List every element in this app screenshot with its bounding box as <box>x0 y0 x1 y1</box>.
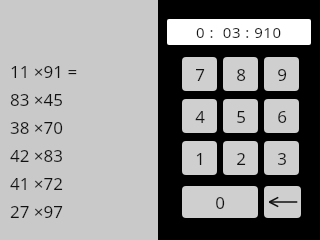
staticText: 1 <box>195 147 205 170</box>
staticText: 7 <box>195 63 205 86</box>
staticText: 6 <box>277 105 287 128</box>
staticText: 38 ×70 <box>10 116 64 139</box>
staticText: 9 <box>277 63 287 86</box>
staticText: 11 ×91 = <box>10 60 78 83</box>
staticText: 0 : 03 : 910 <box>196 22 282 42</box>
button[interactable]: 9 <box>264 57 299 91</box>
button[interactable]: 1 <box>182 141 217 175</box>
staticText: 8 <box>236 63 246 86</box>
button[interactable]: 5 <box>223 99 258 133</box>
staticText: 3 <box>277 147 287 170</box>
staticText: 41 ×72 <box>10 172 64 195</box>
button[interactable]: 8 <box>223 57 258 91</box>
button[interactable]: 6 <box>264 99 299 133</box>
button[interactable]: Backspace <box>264 186 301 218</box>
button[interactable]: 0 <box>182 186 258 218</box>
button[interactable]: 3 <box>264 141 299 175</box>
staticText: 0 <box>215 191 225 214</box>
staticText: 27 ×97 <box>10 200 64 223</box>
staticText: 5 <box>236 105 246 128</box>
button[interactable]: 7 <box>182 57 217 91</box>
staticText: 2 <box>236 147 246 170</box>
button[interactable]: 0 : 03 : 910 <box>167 19 311 45</box>
staticText: 42 ×83 <box>10 144 64 167</box>
staticText: 4 <box>195 105 205 128</box>
button[interactable]: 4 <box>182 99 217 133</box>
button[interactable]: 2 <box>223 141 258 175</box>
staticText: 83 ×45 <box>10 88 64 111</box>
